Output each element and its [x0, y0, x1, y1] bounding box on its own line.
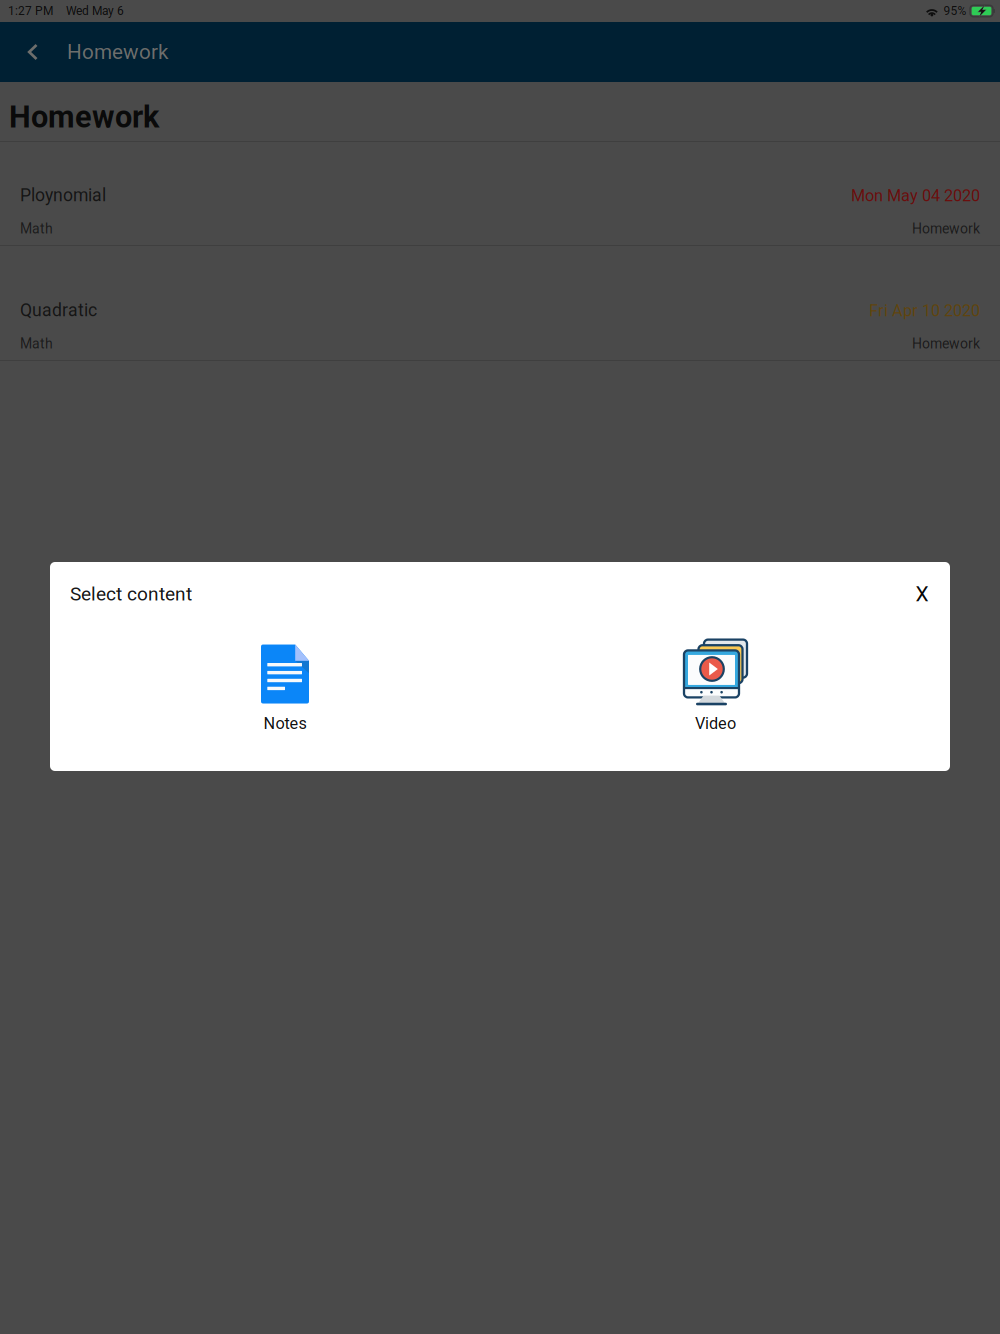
staticText: Math — [20, 221, 53, 237]
staticText: X — [915, 582, 928, 606]
staticText: Homework — [912, 221, 980, 237]
staticText: Homework — [912, 336, 980, 352]
staticText: Homework — [9, 99, 159, 135]
staticText: Math — [20, 336, 53, 352]
button[interactable]: Ploynomial — [0, 142, 1000, 245]
staticText: Mon May 04 2020 — [851, 186, 980, 205]
staticText: Select content — [70, 583, 192, 605]
staticText: Quadratic — [20, 300, 97, 321]
staticText: Wed May 6 — [66, 4, 124, 18]
staticText: Ploynomial — [20, 185, 106, 206]
button[interactable]: Notes — [205, 644, 365, 734]
staticText: Video — [695, 714, 736, 733]
button[interactable]: Close — [902, 574, 942, 614]
button[interactable]: Video — [635, 641, 795, 731]
staticText: Homework — [67, 40, 168, 64]
staticText: 1:27 PM — [8, 4, 53, 18]
button[interactable]: Quadratic — [0, 246, 1000, 360]
staticText: 95% — [943, 4, 966, 18]
staticText: Fri Apr 10 2020 — [869, 301, 980, 320]
staticText: Notes — [263, 714, 306, 733]
button[interactable]: Back — [0, 22, 67, 82]
